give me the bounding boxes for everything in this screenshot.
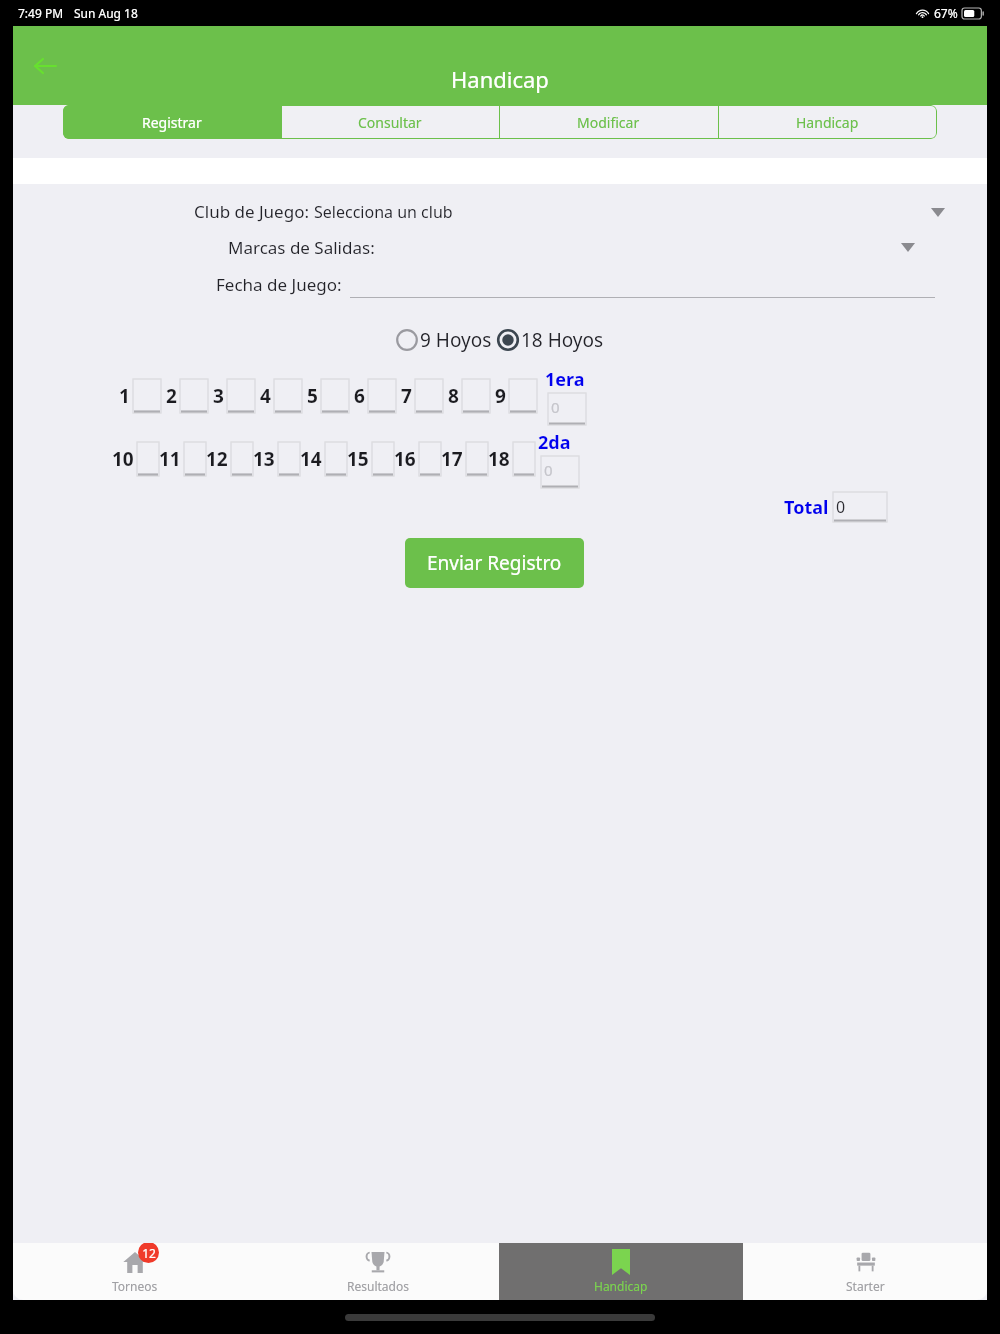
staticText: 1era	[545, 367, 585, 392]
button[interactable]	[513, 442, 535, 476]
staticText: 5	[307, 383, 318, 409]
staticText: 18 Hoyos	[521, 327, 604, 353]
staticText: 4	[260, 383, 271, 409]
staticText: Torneos	[112, 1278, 158, 1294]
button[interactable]: Consultar	[281, 105, 499, 139]
button[interactable]	[278, 442, 300, 476]
staticText: 7:49 PM	[18, 5, 64, 21]
button[interactable]	[231, 442, 253, 476]
button[interactable]: 0	[833, 492, 887, 522]
staticText: 17	[441, 446, 463, 472]
button[interactable]: 0	[541, 456, 579, 488]
button[interactable]: Modificar	[499, 105, 718, 139]
staticText: Starter	[846, 1278, 885, 1294]
staticText: 2da	[538, 430, 571, 455]
staticText: Handicap	[594, 1278, 648, 1294]
button[interactable]: Handicap	[718, 105, 937, 139]
staticText: Club de Juego:	[194, 200, 310, 223]
button[interactable]	[419, 442, 441, 476]
button[interactable]	[509, 379, 537, 413]
staticText: Handicap	[796, 113, 859, 132]
staticText: 16	[394, 446, 416, 472]
staticText: 2	[166, 383, 177, 409]
button[interactable]: 18 Hoyos	[497, 327, 604, 353]
button[interactable]: Registrar	[63, 105, 281, 139]
button[interactable]: Handicap	[499, 1243, 743, 1300]
staticText: 9 Hoyos	[420, 327, 492, 353]
staticText: Registrar	[142, 113, 202, 132]
button[interactable]: 12	[13, 1243, 256, 1300]
button[interactable]	[462, 379, 490, 413]
staticText: Resultados	[347, 1278, 409, 1294]
staticText: 9	[495, 383, 506, 409]
staticText: 12	[206, 446, 228, 472]
button[interactable]	[375, 243, 987, 252]
button[interactable]: 9 Hoyos	[396, 327, 492, 353]
button[interactable]	[133, 379, 161, 413]
button[interactable]	[372, 442, 394, 476]
button[interactable]	[350, 273, 935, 298]
button[interactable]	[184, 442, 206, 476]
staticText: Marcas de Salidas:	[228, 236, 375, 259]
button[interactable]: 0	[548, 393, 586, 425]
staticText: 67%	[934, 5, 958, 21]
staticText: Modificar	[577, 113, 640, 132]
button[interactable]: Resultados	[256, 1243, 499, 1300]
button[interactable]	[368, 379, 396, 413]
button[interactable]	[415, 379, 443, 413]
staticText: 6	[354, 383, 365, 409]
staticText: Consultar	[358, 113, 422, 132]
button[interactable]	[321, 379, 349, 413]
staticText: Fecha de Juego:	[216, 273, 342, 296]
button[interactable]: Enviar Registro	[405, 538, 584, 588]
staticText: 10	[112, 446, 134, 472]
button[interactable]	[274, 379, 302, 413]
staticText: 15	[347, 446, 369, 472]
button[interactable]	[180, 379, 208, 413]
staticText: 18	[488, 446, 510, 472]
button[interactable]: Back	[21, 42, 69, 90]
staticText: 13	[253, 446, 275, 472]
button[interactable]	[137, 442, 159, 476]
button[interactable]	[466, 442, 488, 476]
button[interactable]	[227, 379, 255, 413]
staticText: 0	[836, 496, 846, 518]
staticText: 7	[401, 383, 412, 409]
staticText: 0	[544, 460, 553, 480]
staticText: Total	[784, 495, 829, 520]
staticText: Enviar Registro	[427, 550, 562, 576]
staticText: 3	[213, 383, 224, 409]
staticText: 0	[551, 397, 560, 417]
button[interactable]: Starter	[743, 1243, 987, 1300]
staticText: 14	[300, 446, 322, 472]
staticText: 1	[119, 383, 130, 409]
staticText: 11	[159, 446, 181, 472]
button[interactable]	[325, 442, 347, 476]
staticText: Selecciona un club	[314, 201, 453, 223]
staticText: 12	[142, 1245, 156, 1261]
staticText: Handicap	[451, 64, 549, 94]
staticText: 8	[448, 383, 459, 409]
staticText: Sun Aug 18	[74, 5, 138, 21]
button[interactable]: Selecciona un club	[314, 201, 987, 223]
